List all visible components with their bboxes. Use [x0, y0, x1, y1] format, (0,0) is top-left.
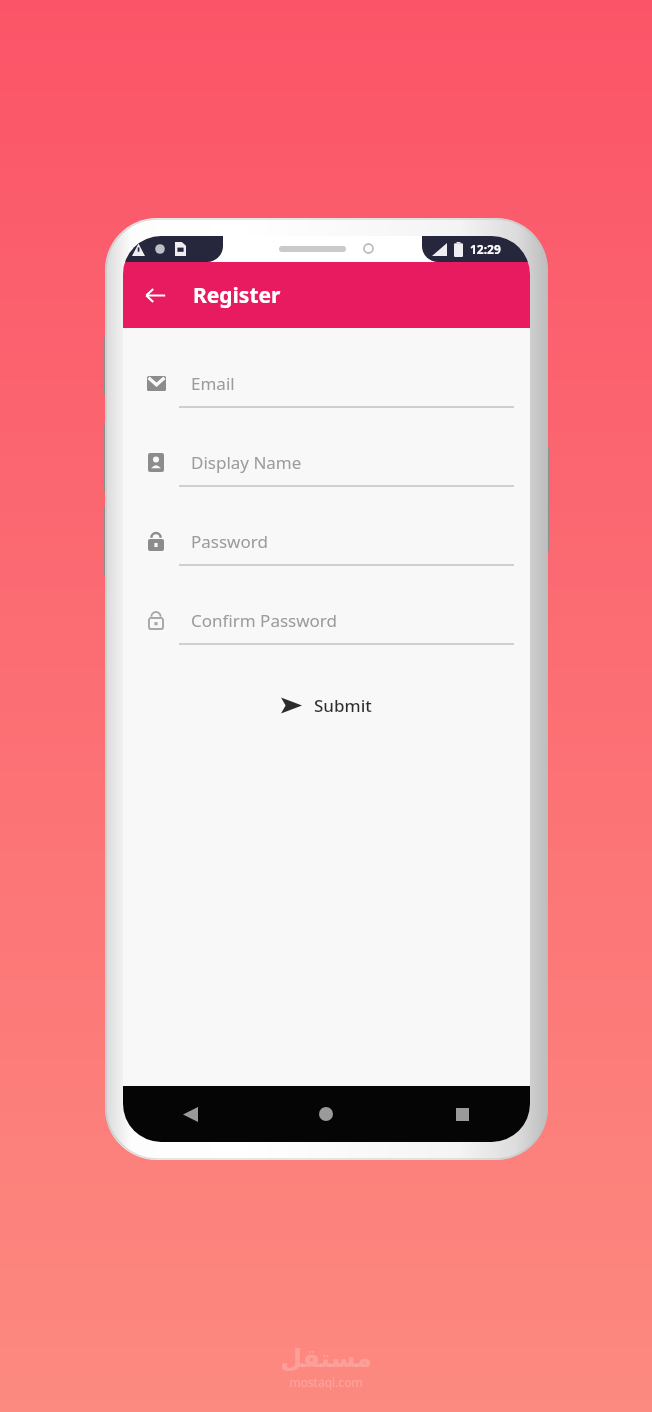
staticText: Register	[193, 281, 281, 310]
button[interactable]: Confirm Password	[123, 597, 530, 676]
staticText: Password	[191, 530, 268, 553]
button[interactable]: Email	[123, 360, 530, 439]
button[interactable]: Back	[131, 271, 179, 319]
staticText: مستقل	[280, 1344, 372, 1373]
button[interactable]: Submit	[267, 686, 386, 725]
button[interactable]: Home	[258, 1086, 394, 1142]
staticText: Display Name	[191, 451, 302, 474]
button[interactable]: Back	[123, 1086, 258, 1142]
button[interactable]: Password	[123, 518, 530, 597]
button[interactable]: Display Name	[123, 439, 530, 518]
button[interactable]: Recents	[394, 1086, 530, 1142]
staticText: Submit	[314, 694, 372, 717]
staticText: Confirm Password	[191, 609, 337, 632]
staticText: 12:29	[470, 241, 501, 257]
staticText: mostaql.com	[289, 1374, 363, 1390]
staticText: Email	[191, 372, 235, 395]
